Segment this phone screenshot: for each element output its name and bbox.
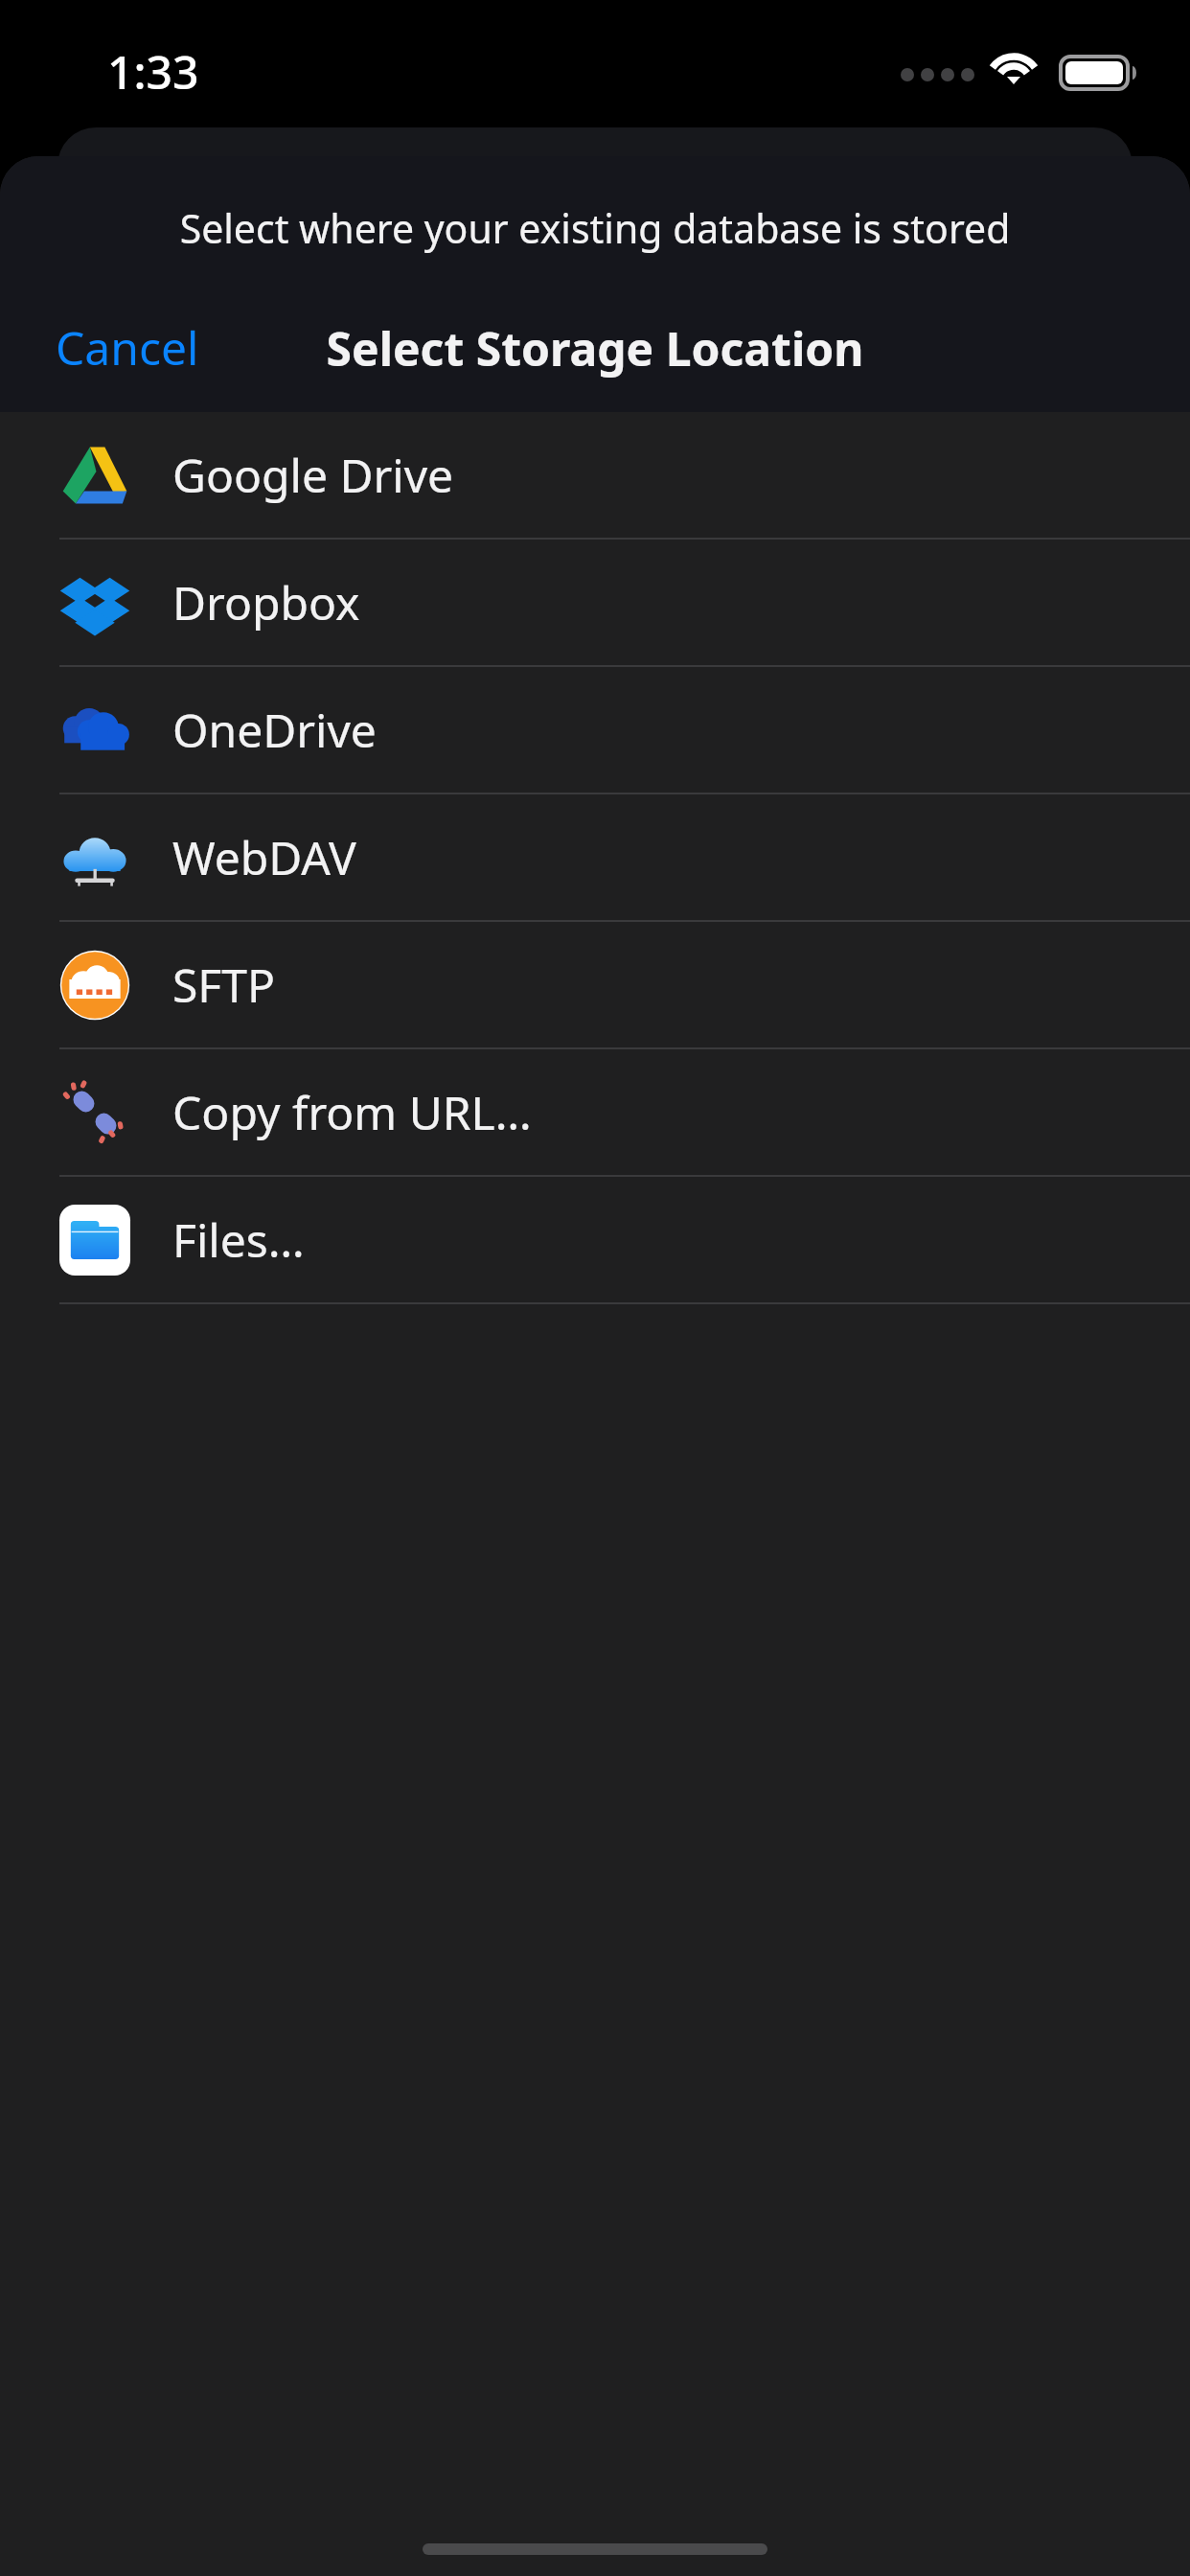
button[interactable]: Cancel: [38, 305, 217, 390]
staticText: Select Storage Location: [0, 317, 1190, 379]
staticText: WebDAV: [172, 826, 356, 888]
staticText: Copy from URL…: [172, 1081, 532, 1143]
staticText: Files…: [172, 1208, 305, 1271]
staticText: Dropbox: [172, 571, 360, 633]
button[interactable]: Dropbox: [0, 540, 1190, 667]
staticText: Google Drive: [172, 444, 454, 506]
button[interactable]: Files…: [0, 1177, 1190, 1304]
button[interactable]: WebDAV: [0, 794, 1190, 922]
button[interactable]: Copy from URL…: [0, 1049, 1190, 1177]
staticText: Select where your existing database is s…: [0, 201, 1190, 255]
button[interactable]: Google Drive: [0, 412, 1190, 540]
staticText: Cancel: [56, 316, 199, 379]
button[interactable]: OneDrive: [0, 667, 1190, 794]
staticText: 1:33: [107, 40, 199, 103]
staticText: OneDrive: [172, 699, 377, 761]
staticText: SFTP: [172, 954, 275, 1016]
button[interactable]: SFTP: [0, 922, 1190, 1049]
